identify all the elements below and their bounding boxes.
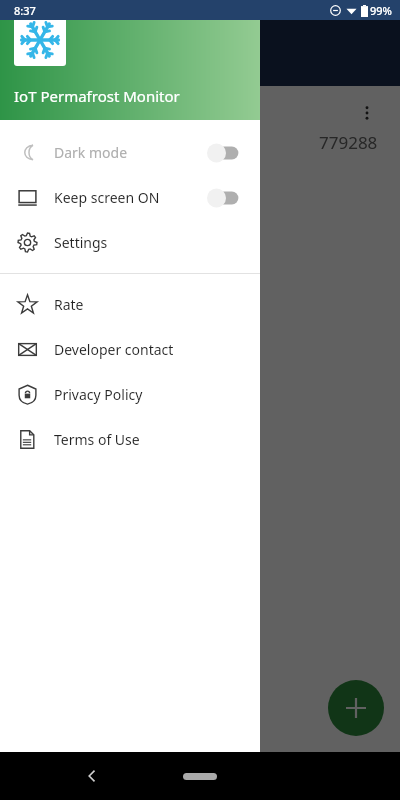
button[interactable]: Dark mode switch	[206, 142, 242, 164]
button[interactable]: IoT Permafrost Monitor	[0, 0, 260, 120]
staticText: Settings	[54, 233, 108, 252]
staticText: 99%	[370, 3, 392, 18]
button[interactable]: Home	[164, 766, 236, 786]
staticText: Rate	[54, 295, 84, 314]
staticText: 8:37	[14, 3, 36, 18]
button[interactable]: Privacy Policy	[0, 372, 260, 417]
button[interactable]: Keep screen ON switch	[206, 187, 242, 209]
button[interactable]: Developer contact	[0, 327, 260, 372]
staticText: 779288	[319, 131, 378, 154]
button[interactable]: Keep screen ON	[0, 175, 260, 220]
staticText: Dark mode	[54, 143, 128, 162]
staticText: Developer contact	[54, 340, 174, 359]
button[interactable]: Add	[328, 680, 384, 736]
button[interactable]: Back	[72, 756, 112, 796]
staticText: IoT Permafrost Monitor	[14, 86, 180, 106]
button[interactable]: Settings	[0, 220, 260, 265]
staticText: Keep screen ON	[54, 188, 160, 207]
button[interactable]: More options	[8, 94, 392, 160]
button[interactable]: Terms of Use	[0, 417, 260, 462]
button[interactable]: More options	[352, 98, 382, 128]
staticText: Privacy Policy	[54, 385, 143, 404]
button[interactable]: Rate	[0, 282, 260, 327]
staticText: Terms of Use	[54, 430, 140, 449]
button[interactable]: Dark mode	[0, 130, 260, 175]
